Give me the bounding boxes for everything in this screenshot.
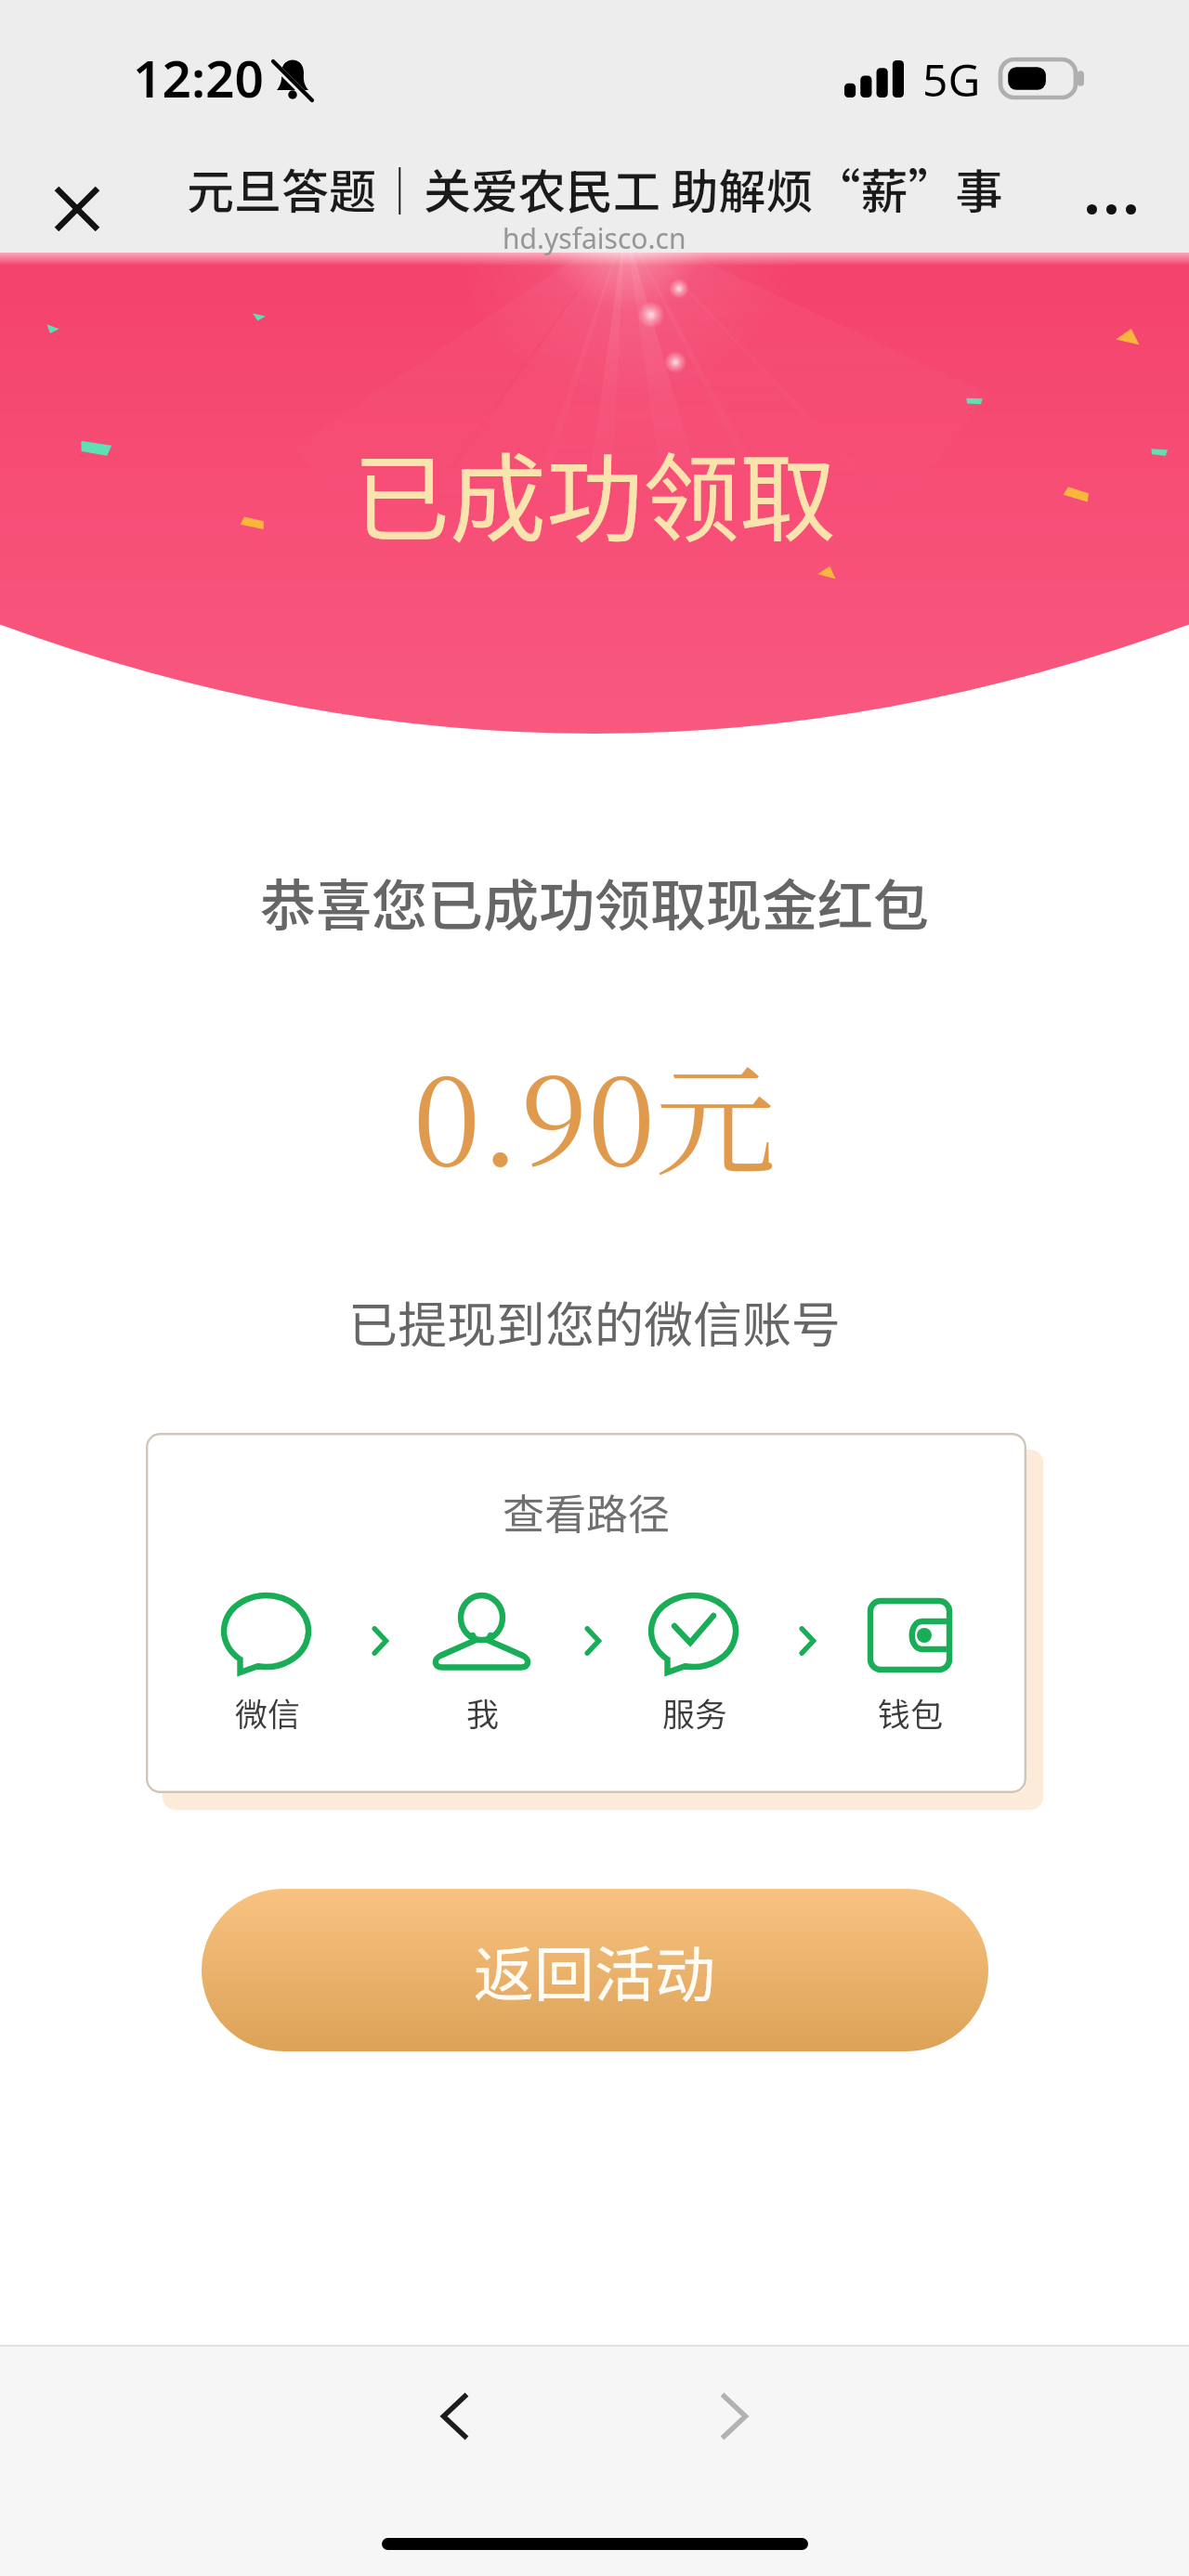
staticText: 服务	[662, 1688, 728, 1736]
button[interactable]: 微信	[216, 1593, 319, 1736]
staticText: 返回活动	[474, 1927, 716, 2014]
staticText: 我	[466, 1688, 500, 1736]
staticText: 元旦答题｜关爱农民工 助解烦“薪”事	[187, 154, 1003, 223]
staticText: 钱包	[878, 1688, 944, 1736]
staticText: 5G	[922, 49, 981, 110]
staticText: 12:20	[133, 43, 265, 112]
button[interactable]: 钱包	[859, 1593, 961, 1736]
staticText: 已成功领取	[353, 422, 837, 562]
button[interactable]: Forward	[687, 2370, 780, 2463]
button[interactable]: Back	[409, 2370, 502, 2463]
button[interactable]: Close	[21, 153, 133, 265]
button[interactable]: More options	[1055, 153, 1167, 265]
staticText: 查看路径	[503, 1481, 671, 1542]
button[interactable]: 返回活动	[202, 1889, 988, 2051]
staticText: 已提现到您的微信账号	[0, 1286, 1189, 1358]
staticText: hd.ysfaisco.cn	[503, 219, 686, 257]
staticText: 恭喜您已成功领取现金红包	[0, 861, 1189, 942]
staticText: 0.90元	[0, 1026, 1189, 1200]
button[interactable]: 服务	[644, 1593, 746, 1736]
staticText: 微信	[235, 1688, 301, 1736]
button[interactable]: 我	[432, 1593, 534, 1736]
